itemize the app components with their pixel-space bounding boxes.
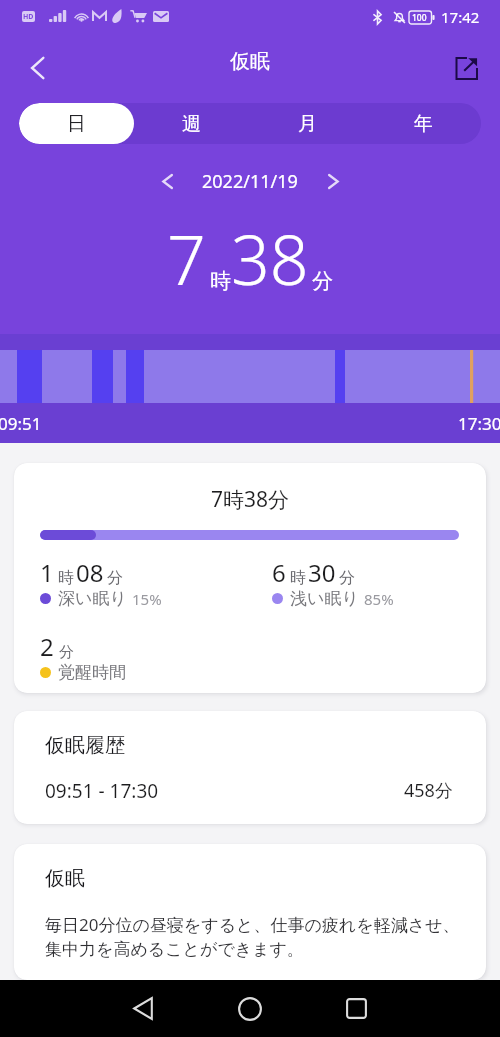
staticText: 年 [414,112,433,136]
button[interactable]: Back [13,44,61,92]
staticText: 浅い眠り [290,588,359,609]
staticText: 6 [272,556,286,589]
staticText: 毎日20分位の昼寝をすると、仕事の疲れを軽減させ、集中力を高めることができます。 [45,913,469,960]
staticText: 時 [58,568,74,588]
staticText: 深い眠り [58,588,127,609]
staticText: 85% [364,589,394,609]
button[interactable]: Back [115,980,171,1037]
staticText: 7時38分 [211,485,290,514]
staticText: 分 [312,268,333,294]
staticText: 時 [290,568,306,588]
staticText: 38 [231,212,309,302]
button[interactable]: 日 [19,103,134,144]
staticText: 2022/11/19 [202,169,298,194]
staticText: 09:51 [0,412,42,435]
staticText: 7 [167,212,206,302]
staticText: 09:51 - 17:30 [45,778,159,804]
staticText: 1 [40,556,54,589]
button[interactable]: Share [444,46,488,90]
staticText: 30 [308,556,336,589]
staticText: 仮眠履歴 [45,733,125,758]
button[interactable]: 週 [134,103,249,144]
staticText: 100 [412,12,427,24]
button[interactable]: Recents [328,980,384,1037]
button[interactable]: 09:51 - 17:30 [45,778,453,804]
staticText: 時 [210,268,231,294]
staticText: 458分 [404,778,453,803]
button[interactable]: Next day [313,161,353,201]
staticText: HD [23,12,34,22]
staticText: 分 [107,568,123,588]
staticText: 2 [40,630,54,663]
staticText: 08 [76,556,104,589]
staticText: 分 [59,643,74,662]
staticText: 仮眠 [45,866,85,891]
staticText: 15% [132,589,162,609]
staticText: 17:30 [458,412,500,435]
staticText: 仮眠 [230,49,270,74]
button[interactable]: Previous day [147,161,187,201]
button[interactable]: Home [222,980,278,1037]
staticText: 週 [182,112,201,136]
staticText: 17:42 [441,7,480,27]
button[interactable]: 月 [249,103,365,144]
staticText: 日 [67,112,86,136]
staticText: 分 [339,568,355,588]
staticText: 月 [298,112,317,136]
button[interactable]: 年 [365,103,481,144]
staticText: 覚醒時間 [58,662,126,683]
